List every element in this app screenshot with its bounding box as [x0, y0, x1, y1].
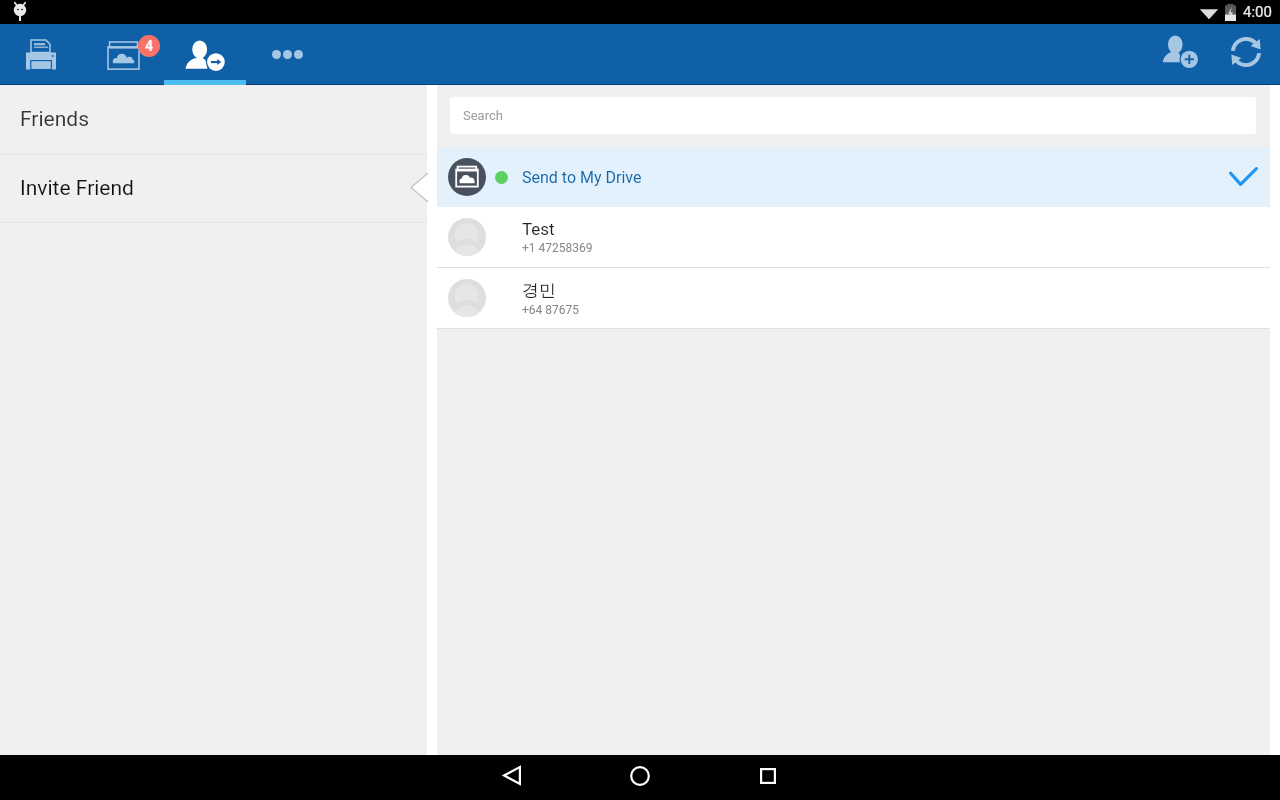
- staticText: Invite Friend: [20, 176, 134, 201]
- button[interactable]: More options: [246, 24, 328, 85]
- button[interactable]: Friends: [0, 85, 427, 154]
- button[interactable]: 경민: [437, 268, 1270, 328]
- staticText: 경민: [522, 280, 556, 301]
- button[interactable]: Test: [437, 207, 1270, 267]
- button[interactable]: Back: [472, 755, 552, 800]
- staticText: Send to My Drive: [522, 168, 642, 187]
- staticText: Search: [463, 108, 503, 123]
- staticText: +1 47258369: [522, 241, 593, 255]
- button[interactable]: Print: [0, 24, 82, 85]
- button[interactable]: Recent apps: [728, 755, 808, 800]
- button[interactable]: Add person: [1146, 24, 1216, 85]
- button[interactable]: Inbox: [82, 24, 164, 85]
- button[interactable]: Search: [450, 97, 1256, 134]
- button[interactable]: Refresh: [1216, 24, 1280, 85]
- staticText: 4:00: [1243, 3, 1272, 21]
- staticText: 4: [145, 38, 153, 54]
- button[interactable]: Invite friend: [164, 24, 246, 85]
- button[interactable]: Send to My Drive: [437, 147, 1270, 207]
- staticText: +64 87675: [522, 303, 579, 317]
- button[interactable]: Invite Friend: [0, 155, 427, 222]
- staticText: Friends: [20, 107, 89, 132]
- button[interactable]: Home: [600, 755, 680, 800]
- staticText: Test: [522, 219, 555, 239]
